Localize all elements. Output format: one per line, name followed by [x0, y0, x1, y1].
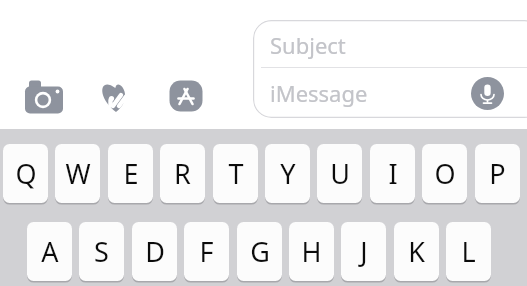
button[interactable]: E — [108, 144, 153, 203]
button[interactable]: A — [27, 222, 72, 281]
button[interactable]: R — [160, 144, 205, 203]
staticText: R — [174, 155, 191, 192]
button[interactable]: D — [132, 222, 177, 281]
button[interactable]: O — [422, 144, 467, 203]
button[interactable]: G — [237, 222, 282, 281]
button[interactable]: App Store — [163, 74, 209, 118]
staticText: J — [360, 233, 368, 270]
button[interactable]: F — [184, 222, 229, 281]
staticText: I — [388, 155, 398, 192]
button[interactable]: P — [475, 144, 520, 203]
staticText: S — [94, 233, 109, 270]
button[interactable]: J — [341, 222, 386, 281]
staticText: iMessage — [270, 78, 368, 108]
staticText: A — [41, 233, 59, 270]
button[interactable]: H — [289, 222, 334, 281]
staticText: Y — [280, 155, 296, 192]
staticText: Subject — [270, 30, 346, 60]
staticText: G — [250, 233, 270, 270]
button[interactable]: S — [79, 222, 124, 281]
staticText: E — [123, 155, 139, 192]
staticText: Q — [15, 155, 37, 192]
staticText: W — [65, 155, 91, 192]
button[interactable]: Y — [265, 144, 310, 203]
staticText: K — [408, 233, 425, 270]
staticText: T — [228, 155, 244, 192]
button[interactable]: U — [317, 144, 362, 203]
button[interactable]: Camera — [18, 74, 70, 120]
button[interactable]: T — [213, 144, 258, 203]
staticText: P — [489, 155, 506, 192]
button[interactable]: L — [446, 222, 491, 281]
staticText: O — [434, 155, 456, 192]
staticText: F — [199, 233, 214, 270]
staticText: D — [145, 233, 165, 270]
button[interactable]: W — [55, 144, 100, 203]
staticText: U — [330, 155, 350, 192]
button[interactable]: Subject — [253, 20, 527, 118]
button[interactable]: I — [370, 144, 415, 203]
staticText: H — [301, 233, 322, 270]
button[interactable]: K — [394, 222, 439, 281]
button[interactable]: Digital Touch — [92, 73, 140, 119]
button[interactable]: Q — [3, 144, 48, 203]
staticText: L — [461, 233, 476, 270]
button[interactable]: Dictate — [471, 77, 504, 110]
